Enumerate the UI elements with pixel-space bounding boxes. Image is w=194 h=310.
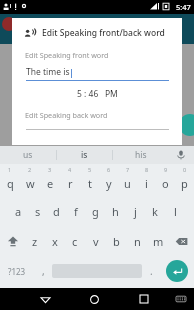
staticText: e [47, 176, 54, 191]
staticText: 8 [145, 166, 149, 173]
staticText: 5 : 46 PM [77, 88, 118, 100]
staticText: n [134, 234, 141, 249]
staticText: r [68, 176, 73, 191]
button[interactable]: 1 [0, 164, 20, 196]
staticText: f [74, 204, 78, 219]
staticText: his [135, 149, 147, 161]
staticText: a [15, 204, 22, 219]
button[interactable]: b [106, 226, 127, 256]
staticText: q [7, 176, 14, 191]
button[interactable]: 8 [137, 164, 156, 196]
button[interactable]: f [66, 196, 85, 226]
staticText: 2 [28, 166, 32, 173]
button[interactable]: 2 [20, 164, 40, 196]
button[interactable]: Recent apps [119, 288, 168, 310]
staticText: 5:47 [176, 2, 191, 12]
button[interactable]: j [125, 196, 145, 226]
button[interactable]: a [9, 196, 28, 226]
button[interactable]: us [0, 146, 56, 164]
staticText: g [92, 204, 99, 219]
button[interactable]: Period [142, 256, 160, 286]
button[interactable]: s [28, 196, 47, 226]
staticText: 9 [164, 166, 168, 173]
staticText: l [174, 204, 177, 219]
button[interactable]: Backspace [169, 226, 194, 256]
button[interactable]: m [148, 226, 169, 256]
staticText: x [52, 234, 58, 249]
button[interactable]: 7 [118, 164, 137, 196]
staticText: 6 [107, 166, 111, 173]
button[interactable]: d [47, 196, 66, 226]
staticText: ?123 [8, 266, 26, 277]
button[interactable]: g [85, 196, 105, 226]
staticText: The time is [26, 66, 70, 78]
button[interactable]: 6 [99, 164, 118, 196]
staticText: b [113, 234, 120, 249]
button[interactable]: l [165, 196, 185, 226]
staticText: is [81, 149, 88, 161]
staticText: d [53, 204, 60, 219]
staticText: y [106, 176, 112, 191]
button[interactable]: Back [20, 288, 70, 310]
staticText: Edit Speaking front/back word [42, 27, 165, 39]
button[interactable]: v [85, 226, 106, 256]
staticText: 5 [88, 166, 92, 173]
button[interactable]: 4 [60, 164, 80, 196]
button[interactable]: k [145, 196, 165, 226]
staticText: Edit Speaking back word [25, 110, 108, 120]
staticText: us [23, 149, 33, 161]
button[interactable]: Shift [0, 226, 25, 256]
button[interactable]: z [25, 226, 45, 256]
staticText: , [42, 264, 45, 278]
staticText: c [72, 234, 78, 249]
staticText: v [93, 234, 99, 249]
button[interactable]: 0 [175, 164, 194, 196]
button[interactable]: n [127, 226, 148, 256]
button[interactable]: 3 [40, 164, 60, 196]
staticText: Edit Speaking front word [25, 50, 109, 60]
button[interactable]: 9 [156, 164, 175, 196]
staticText: 0 [183, 166, 187, 173]
button[interactable]: his [113, 146, 168, 164]
button[interactable]: ?123 [0, 256, 34, 286]
button[interactable]: x [45, 226, 65, 256]
staticText: t [88, 176, 92, 191]
staticText: z [32, 234, 38, 249]
button[interactable]: c [65, 226, 85, 256]
staticText: i [145, 176, 148, 191]
button[interactable]: Voice input [168, 146, 194, 164]
staticText: 4 [68, 166, 72, 173]
staticText: . [150, 264, 153, 278]
staticText: u [124, 176, 131, 191]
other: Speaking [24, 28, 35, 39]
button[interactable]: Enter [160, 256, 194, 286]
staticText: s [35, 204, 41, 219]
staticText: p [181, 176, 188, 191]
staticText: j [134, 204, 137, 219]
button[interactable]: Switch keyboard [168, 288, 194, 310]
button[interactable]: is [57, 146, 112, 164]
button[interactable]: Home [70, 288, 119, 310]
button[interactable]: 5 [80, 164, 99, 196]
staticText: 3 [48, 166, 52, 173]
staticText: o [162, 176, 169, 191]
staticText: 7 [126, 166, 130, 173]
staticText: h [112, 204, 119, 219]
button[interactable]: Comma [34, 256, 52, 286]
button[interactable]: h [105, 196, 125, 226]
staticText: w [26, 176, 35, 191]
staticText: k [152, 204, 158, 219]
staticText: m [153, 234, 164, 249]
staticText: 1 [8, 166, 12, 173]
